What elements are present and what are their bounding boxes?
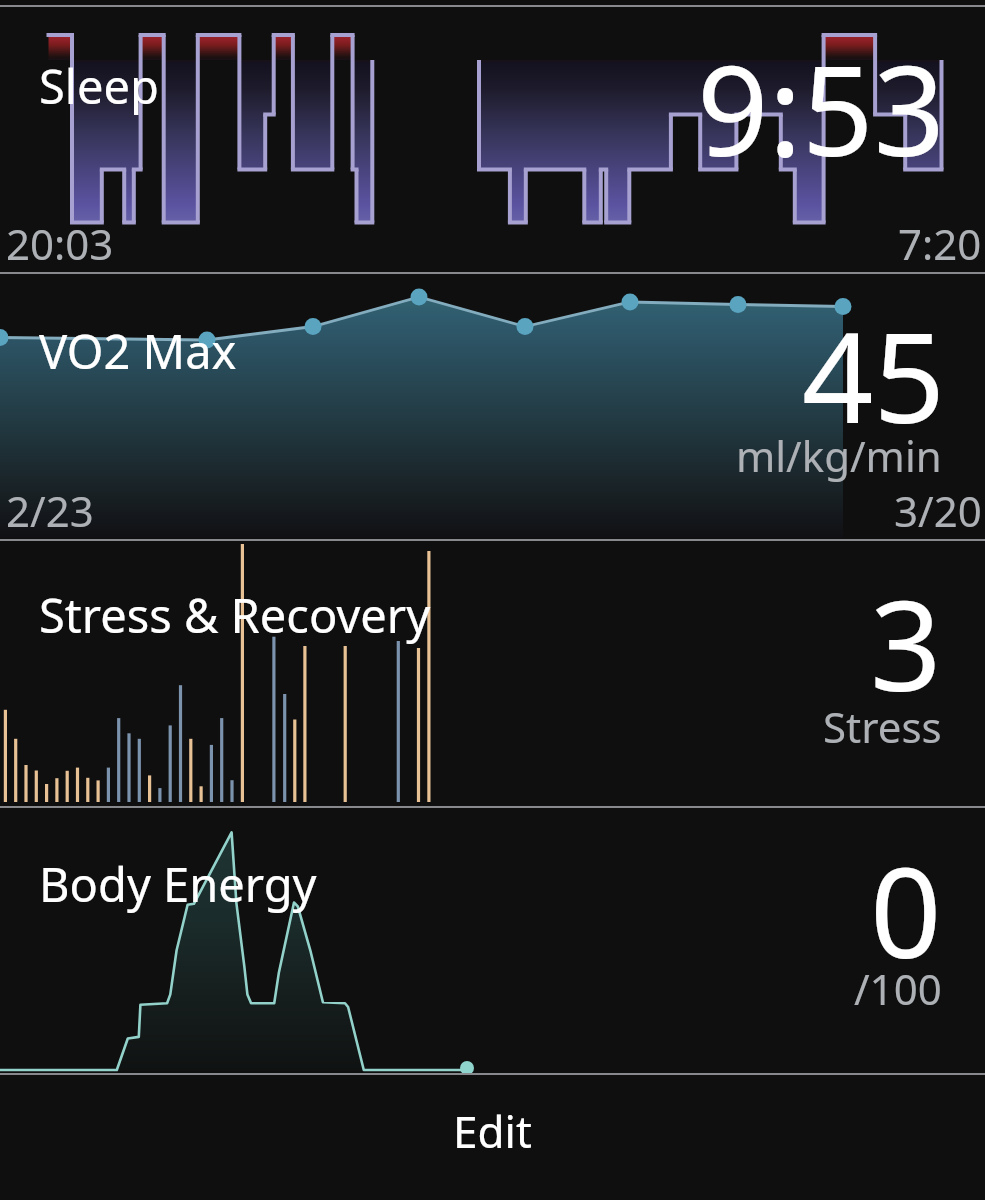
staticText: 7:20 xyxy=(898,215,982,272)
staticText: Stress xyxy=(823,698,942,755)
staticText: 3 xyxy=(870,557,942,727)
staticText: ml/kg/min xyxy=(736,427,942,484)
staticText: 2/23 xyxy=(6,482,94,539)
button[interactable]: Sleep xyxy=(0,7,985,272)
staticText: Edit xyxy=(453,1101,532,1161)
staticText: 3/20 xyxy=(894,482,982,539)
staticText: 20:03 xyxy=(6,215,114,272)
staticText: VO2 Max xyxy=(39,319,237,383)
staticText: Stress & Recovery xyxy=(39,583,431,647)
staticText: 45 xyxy=(802,289,945,459)
staticText: 9:53 xyxy=(697,22,945,192)
button[interactable]: Edit xyxy=(0,1075,985,1200)
staticText: Body Energy xyxy=(39,852,317,916)
button[interactable]: Stress & Recovery xyxy=(0,541,985,806)
staticText: /100 xyxy=(854,960,942,1017)
staticText: 0 xyxy=(870,824,942,994)
button[interactable]: VO2 Max xyxy=(0,274,985,539)
button[interactable]: Body Energy xyxy=(0,808,985,1073)
staticText: Sleep xyxy=(39,54,159,118)
